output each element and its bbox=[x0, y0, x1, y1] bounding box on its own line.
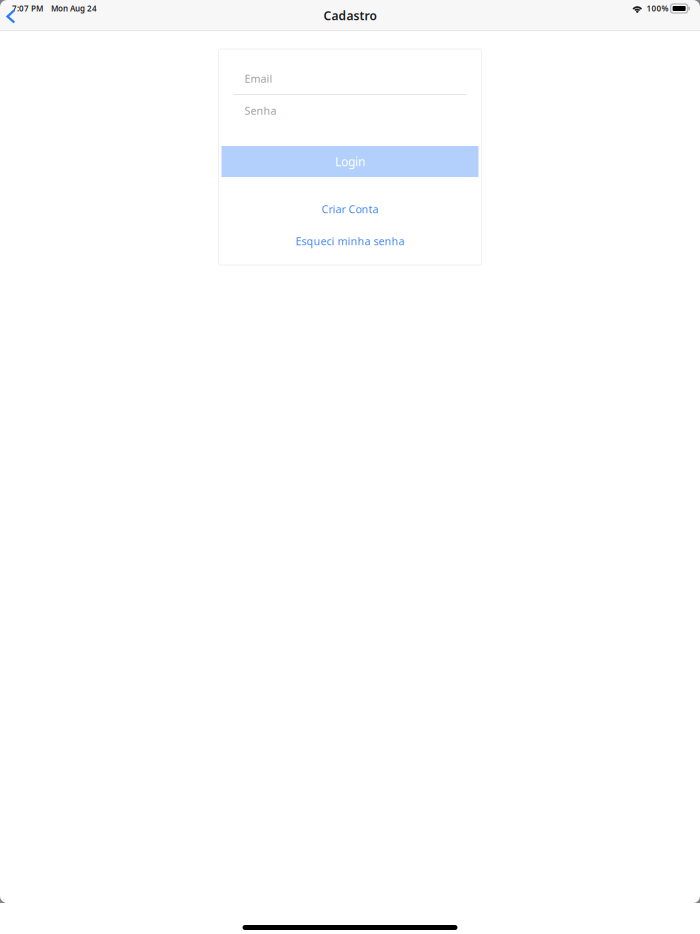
staticText: Login bbox=[335, 153, 365, 169]
staticText: Criar Conta bbox=[321, 202, 378, 216]
staticText: 7:07 PM bbox=[12, 3, 43, 14]
staticText: Email bbox=[244, 71, 272, 86]
button[interactable]: Login bbox=[221, 146, 478, 177]
button[interactable]: Esqueci minha senha bbox=[269, 233, 430, 249]
staticText: Senha bbox=[244, 103, 276, 118]
staticText: Mon Aug 24 bbox=[51, 3, 97, 14]
button[interactable]: Back bbox=[0, 3, 22, 29]
staticText: Cadastro bbox=[323, 7, 376, 23]
button[interactable]: Criar Conta bbox=[295, 201, 404, 217]
staticText: Esqueci minha senha bbox=[295, 234, 404, 248]
staticText: 100% bbox=[647, 3, 669, 14]
